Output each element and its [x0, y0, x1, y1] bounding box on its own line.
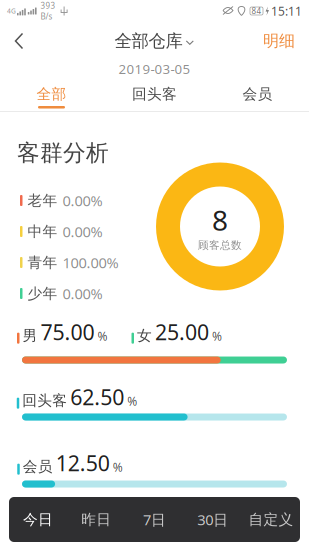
staticText: 今日 — [23, 510, 53, 528]
button[interactable]: 7日 — [125, 497, 184, 542]
staticText: 老年 — [27, 191, 57, 209]
staticText: 393 — [41, 0, 56, 11]
staticText: % — [97, 328, 107, 344]
staticText: 0.00% — [62, 191, 102, 210]
staticText: 25.00 — [155, 318, 209, 346]
staticText: 女 — [137, 327, 152, 345]
staticText: 男 — [22, 327, 37, 345]
button[interactable]: 明细 — [251, 22, 309, 60]
staticText: % — [127, 393, 137, 409]
staticText: 0.00% — [62, 284, 102, 303]
staticText: 0.00% — [62, 222, 102, 241]
staticText: 15:11 — [271, 3, 302, 19]
staticText: 回头客 — [22, 392, 67, 410]
staticText: 12.50 — [56, 449, 110, 477]
staticText: 昨日 — [81, 510, 111, 528]
staticText: 会员 — [23, 458, 53, 476]
staticText: 客群分析 — [17, 139, 109, 167]
button[interactable]: 30日 — [184, 497, 242, 542]
staticText: 2019-03-05 — [118, 60, 190, 78]
button[interactable]: 昨日 — [67, 497, 125, 542]
staticText: 回头客 — [132, 85, 177, 103]
button[interactable]: Back — [0, 22, 36, 60]
staticText: 全部 — [36, 85, 66, 103]
staticText: % — [113, 459, 123, 475]
staticText: 明细 — [263, 31, 295, 51]
staticText: 4G — [7, 7, 16, 15]
staticText: 30日 — [197, 510, 228, 529]
staticText: 自定义 — [248, 510, 293, 528]
staticText: 中年 — [27, 222, 57, 240]
staticText: % — [212, 328, 222, 344]
staticText: 100.00% — [62, 253, 118, 272]
button[interactable]: 回头客 — [103, 83, 206, 111]
button[interactable]: 全部 — [0, 83, 103, 111]
button[interactable]: 自定义 — [242, 497, 300, 542]
staticText: 62.50 — [70, 383, 124, 411]
staticText: 顾客总数 — [198, 238, 242, 252]
staticText: 8 — [212, 201, 228, 239]
staticText: 75.00 — [40, 318, 94, 346]
staticText: 少年 — [27, 284, 57, 302]
button[interactable]: 今日 — [9, 497, 67, 542]
staticText: 会员 — [242, 85, 272, 103]
button[interactable]: 全部仓库 — [114, 22, 194, 60]
button[interactable]: 会员 — [206, 83, 309, 111]
staticText: B/s — [41, 11, 53, 22]
staticText: 7日 — [143, 510, 166, 529]
staticText: 青年 — [27, 253, 57, 271]
staticText: 84 — [251, 6, 261, 16]
staticText: 全部仓库 — [114, 30, 182, 52]
